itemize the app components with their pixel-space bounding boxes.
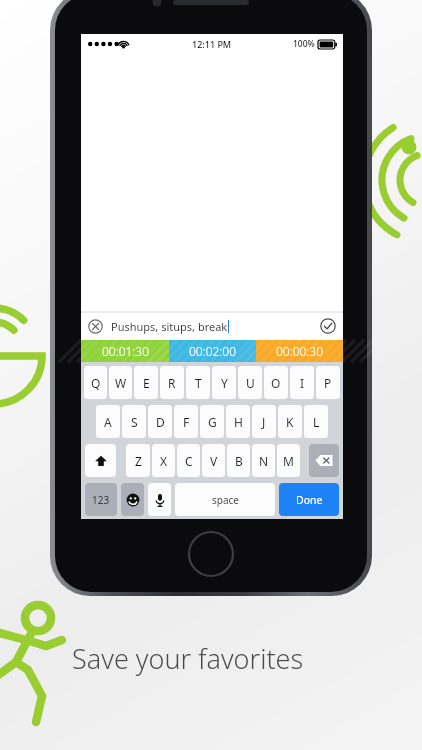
staticText: S <box>131 414 138 430</box>
button[interactable]: Dictation <box>148 483 171 516</box>
staticText: 123 <box>92 493 110 507</box>
button[interactable]: R <box>160 366 184 399</box>
button[interactable]: N <box>252 444 275 477</box>
button[interactable]: G <box>200 405 224 438</box>
staticText: Z <box>135 453 142 469</box>
staticText: 100% <box>293 38 315 50</box>
button[interactable]: Emoji <box>121 483 144 516</box>
staticText: 00:02:00 <box>189 343 236 359</box>
staticText: space <box>212 493 239 507</box>
staticText: J <box>262 414 266 430</box>
staticText: 00:01:30 <box>102 343 149 359</box>
button[interactable]: A <box>96 405 120 438</box>
button[interactable]: X <box>152 444 175 477</box>
staticText: C <box>185 453 193 469</box>
button[interactable]: D <box>148 405 172 438</box>
button[interactable]: H <box>226 405 250 438</box>
button[interactable]: U <box>238 366 262 399</box>
button[interactable]: K <box>278 405 302 438</box>
staticText: I <box>300 375 305 391</box>
staticText: Save your favorites <box>72 640 304 677</box>
button[interactable]: Clear <box>87 318 104 335</box>
staticText: A <box>104 414 112 430</box>
staticText: E <box>143 375 150 391</box>
button[interactable]: Confirm <box>319 317 337 335</box>
staticText: M <box>283 453 294 469</box>
button[interactable]: V <box>202 444 225 477</box>
staticText: Q <box>91 375 101 391</box>
staticText: D <box>156 414 165 430</box>
staticText: B <box>235 453 243 469</box>
staticText: F <box>183 414 190 430</box>
button[interactable]: I <box>290 366 314 399</box>
button[interactable]: Shift <box>85 444 116 477</box>
button[interactable]: Z <box>126 444 150 477</box>
button[interactable]: 00:02:00 <box>169 340 256 362</box>
button[interactable]: O <box>264 366 288 399</box>
button[interactable]: Backspace <box>309 444 339 477</box>
button[interactable]: Done <box>279 483 339 516</box>
staticText: G <box>208 414 217 430</box>
button[interactable]: Y <box>212 366 236 399</box>
button[interactable]: C <box>177 444 200 477</box>
staticText: U <box>246 375 255 391</box>
staticText: L <box>313 414 320 430</box>
button[interactable]: 123 <box>85 483 117 516</box>
staticText: X <box>160 453 168 469</box>
staticText: K <box>286 414 294 430</box>
button[interactable]: space <box>175 483 275 516</box>
button[interactable]: W <box>109 366 132 399</box>
staticText: T <box>195 375 202 391</box>
staticText: W <box>115 375 127 391</box>
staticText: V <box>210 453 218 469</box>
button[interactable]: Q <box>84 366 107 399</box>
button[interactable]: 00:00:30 <box>256 340 343 362</box>
button[interactable]: P <box>316 366 340 399</box>
staticText: 12:11 PM <box>192 38 232 50</box>
button[interactable]: M <box>277 444 300 477</box>
button[interactable]: T <box>186 366 210 399</box>
button[interactable]: L <box>304 405 328 438</box>
button[interactable]: 00:01:30 <box>81 340 169 362</box>
staticText: N <box>259 453 269 469</box>
staticText: R <box>168 375 176 391</box>
button[interactable]: J <box>252 405 276 438</box>
staticText: 00:00:30 <box>276 343 323 359</box>
button[interactable]: B <box>227 444 250 477</box>
staticText: H <box>234 414 243 430</box>
staticText: O <box>271 375 281 391</box>
staticText: P <box>324 375 332 391</box>
button[interactable]: E <box>134 366 158 399</box>
button[interactable]: F <box>174 405 198 438</box>
staticText: Pushups, situps, break <box>111 319 228 334</box>
button[interactable]: S <box>122 405 146 438</box>
staticText: Done <box>296 493 323 507</box>
staticText: Y <box>221 375 228 391</box>
